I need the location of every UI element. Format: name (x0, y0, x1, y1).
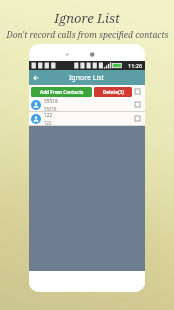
button[interactable]: 55518 (29, 98, 145, 111)
staticText: 55518 (44, 106, 57, 111)
staticText: Don't record calls from specified contac… (6, 29, 169, 41)
staticText: 122 (44, 112, 53, 119)
staticText: Ignore List (54, 9, 120, 27)
button[interactable]: Select 122 (134, 115, 141, 122)
staticText: 11:26 (128, 62, 143, 69)
button[interactable]: Back (29, 71, 43, 85)
button[interactable]: Select all (134, 88, 141, 95)
button[interactable]: Delete(3) (94, 87, 132, 97)
staticText: Add From Contacts (40, 89, 84, 95)
staticText: 55518 (44, 98, 58, 105)
button[interactable]: Add From Contacts (31, 87, 92, 97)
button[interactable]: Select 55518 (134, 101, 141, 108)
button[interactable]: 122 (29, 112, 145, 125)
staticText: Delete(3) (103, 89, 124, 95)
staticText: Ignore List (69, 73, 105, 83)
staticText: 122 (44, 120, 52, 125)
